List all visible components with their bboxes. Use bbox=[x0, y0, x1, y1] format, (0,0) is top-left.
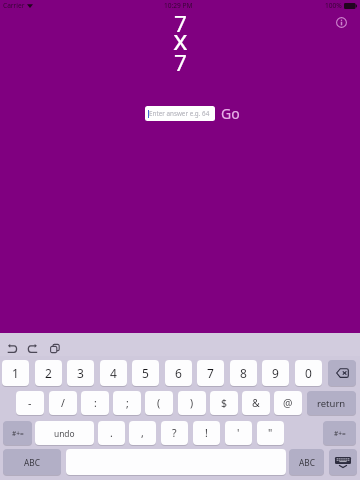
button[interactable]: Redo bbox=[28, 343, 38, 353]
staticText: 100% bbox=[325, 1, 342, 10]
staticText: ( bbox=[157, 396, 161, 410]
button[interactable]: 8 bbox=[230, 360, 257, 386]
staticText: / bbox=[61, 396, 65, 410]
staticText: Enter answer e.g. 64 bbox=[149, 109, 210, 118]
staticText: #+= bbox=[334, 429, 346, 438]
staticText: 5 bbox=[142, 365, 149, 381]
staticText: . bbox=[110, 426, 113, 440]
button[interactable]: Undo bbox=[7, 343, 17, 353]
staticText: - bbox=[28, 396, 32, 410]
staticText: 10:29 PM bbox=[164, 1, 193, 10]
button[interactable]: . bbox=[98, 421, 125, 445]
button[interactable]: / bbox=[49, 391, 77, 415]
staticText: & bbox=[252, 396, 260, 410]
button[interactable]: 7 bbox=[197, 360, 224, 386]
button[interactable]: : bbox=[81, 391, 109, 415]
staticText: Go bbox=[221, 104, 240, 123]
staticText: 7 bbox=[174, 8, 187, 39]
staticText: x bbox=[173, 21, 188, 58]
button[interactable]: 3 bbox=[67, 360, 94, 386]
staticText: @ bbox=[283, 396, 293, 410]
staticText: 0 bbox=[305, 365, 312, 381]
staticText: " bbox=[268, 426, 273, 440]
button[interactable]: 2 bbox=[35, 360, 62, 386]
staticText: ; bbox=[126, 396, 129, 410]
button[interactable]: #+= bbox=[323, 421, 356, 445]
staticText: : bbox=[94, 396, 97, 410]
button[interactable]: ( bbox=[145, 391, 173, 415]
button[interactable]: ) bbox=[178, 391, 206, 415]
staticText: 3 bbox=[77, 365, 84, 381]
staticText: 7 bbox=[174, 47, 187, 78]
staticText: 8 bbox=[240, 365, 247, 381]
button[interactable]: Copy bbox=[50, 343, 60, 353]
staticText: ! bbox=[205, 426, 208, 440]
button[interactable]: ! bbox=[193, 421, 220, 445]
staticText: Carrier bbox=[3, 1, 25, 10]
staticText: 4 bbox=[110, 365, 117, 381]
button[interactable]: 5 bbox=[132, 360, 159, 386]
staticText: ABC bbox=[299, 457, 315, 468]
button[interactable]: 9 bbox=[262, 360, 289, 386]
button[interactable]: Go bbox=[221, 104, 240, 123]
staticText: undo bbox=[54, 428, 75, 439]
button[interactable]: & bbox=[242, 391, 270, 415]
staticText: 6 bbox=[175, 365, 182, 381]
staticText: , bbox=[141, 426, 144, 440]
button[interactable]: 4 bbox=[100, 360, 127, 386]
button[interactable]: $ bbox=[210, 391, 238, 415]
staticText: ABC bbox=[24, 457, 40, 468]
button[interactable]: ABC bbox=[289, 449, 324, 475]
button[interactable]: - bbox=[16, 391, 44, 415]
staticText: $ bbox=[221, 396, 228, 410]
staticText: 7 bbox=[207, 365, 214, 381]
button[interactable]: Info bbox=[331, 12, 352, 33]
button[interactable]: 1 bbox=[2, 360, 29, 386]
staticText: ? bbox=[172, 426, 177, 440]
button[interactable]: return bbox=[307, 391, 356, 415]
button[interactable]: ; bbox=[113, 391, 141, 415]
button[interactable]: Delete bbox=[328, 360, 356, 386]
button[interactable]: ? bbox=[161, 421, 188, 445]
button[interactable]: 0 bbox=[295, 360, 322, 386]
button[interactable]: @ bbox=[274, 391, 302, 415]
staticText: ) bbox=[190, 396, 194, 410]
button[interactable]: undo bbox=[35, 421, 94, 445]
button[interactable]: , bbox=[129, 421, 156, 445]
button[interactable]: ' bbox=[225, 421, 252, 445]
staticText: 2 bbox=[45, 365, 52, 381]
staticText: 1 bbox=[12, 365, 19, 381]
button[interactable]: " bbox=[257, 421, 284, 445]
button[interactable]: 6 bbox=[165, 360, 192, 386]
button[interactable]: ABC bbox=[3, 449, 61, 475]
button[interactable]: Enter answer e.g. 64 bbox=[145, 106, 215, 121]
button[interactable]: #+= bbox=[3, 421, 32, 445]
staticText: 9 bbox=[272, 365, 279, 381]
staticText: ' bbox=[237, 426, 240, 440]
staticText: #+= bbox=[12, 429, 24, 438]
button[interactable]: Hide keyboard bbox=[329, 449, 357, 475]
staticText: return bbox=[317, 397, 346, 410]
